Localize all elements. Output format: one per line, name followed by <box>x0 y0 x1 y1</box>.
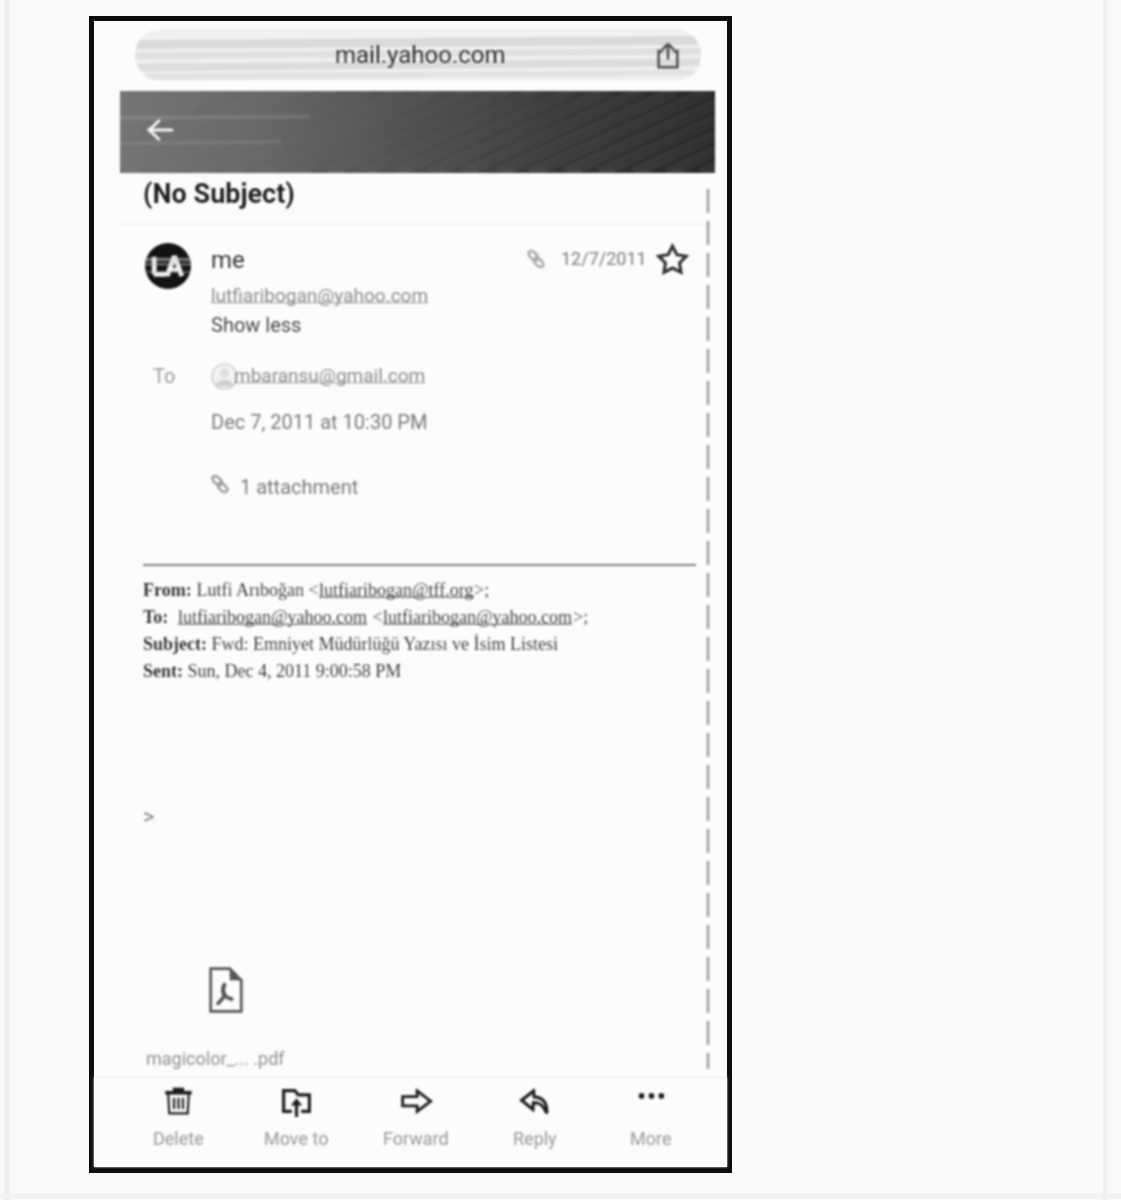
button[interactable]: 1 attachment <box>207 468 362 500</box>
staticText: mail.yahoo.com <box>335 41 506 69</box>
staticText: > <box>143 804 155 830</box>
button[interactable]: Forward <box>368 1077 464 1166</box>
button[interactable]: Show less <box>211 313 302 336</box>
staticText: 12/7/2011 <box>561 248 647 269</box>
staticText: 1 attachment <box>240 475 359 498</box>
button[interactable]: PDF attachment <box>208 966 244 1014</box>
staticText: >; <box>474 580 490 600</box>
staticText: mbaransu@gmail.com <box>234 364 426 386</box>
staticText: lutfiaribogan@yahoo.com <box>211 284 429 306</box>
staticText: Sent: <box>143 661 183 681</box>
staticText: lutfiaribogan@tff.org <box>319 580 474 600</box>
staticText: More <box>630 1128 672 1149</box>
button[interactable]: More <box>603 1077 699 1166</box>
staticText: Forward <box>383 1128 449 1149</box>
staticText: < <box>368 607 383 627</box>
button[interactable]: Reply <box>487 1077 583 1166</box>
staticText: lutfiaribogan@yahoo.com <box>383 607 573 627</box>
staticText <box>169 607 178 627</box>
staticText: magicolor_... .pdf <box>146 1048 285 1069</box>
staticText: me <box>211 246 245 274</box>
staticText: Lutfi Arıboğan < <box>192 580 319 600</box>
button[interactable]: Share <box>653 39 683 71</box>
staticText: Move to <box>264 1128 329 1149</box>
staticText: Dec 7, 2011 at 10:30 PM <box>211 410 428 433</box>
staticText: >; <box>573 607 589 627</box>
button[interactable]: mail.yahoo.com <box>135 29 701 81</box>
button[interactable]: Delete <box>130 1077 226 1166</box>
staticText: Delete <box>153 1128 204 1149</box>
staticText: From: <box>143 580 192 600</box>
button[interactable]: Move to <box>248 1077 344 1166</box>
staticText: To: <box>143 607 169 627</box>
staticText: Subject: <box>143 634 207 654</box>
staticText: Reply <box>513 1128 557 1149</box>
staticText: lutfiaribogan@yahoo.com <box>178 607 368 627</box>
button[interactable]: Back <box>146 118 173 141</box>
staticText: (No Subject) <box>143 178 295 210</box>
button[interactable]: Star <box>658 245 687 274</box>
staticText: To <box>153 364 176 387</box>
staticText: Sun, Dec 4, 2011 9:00:58 PM <box>183 661 402 681</box>
staticText: Fwd: Emniyet Müdürlüğü Yazısı ve İsim Li… <box>207 634 558 654</box>
